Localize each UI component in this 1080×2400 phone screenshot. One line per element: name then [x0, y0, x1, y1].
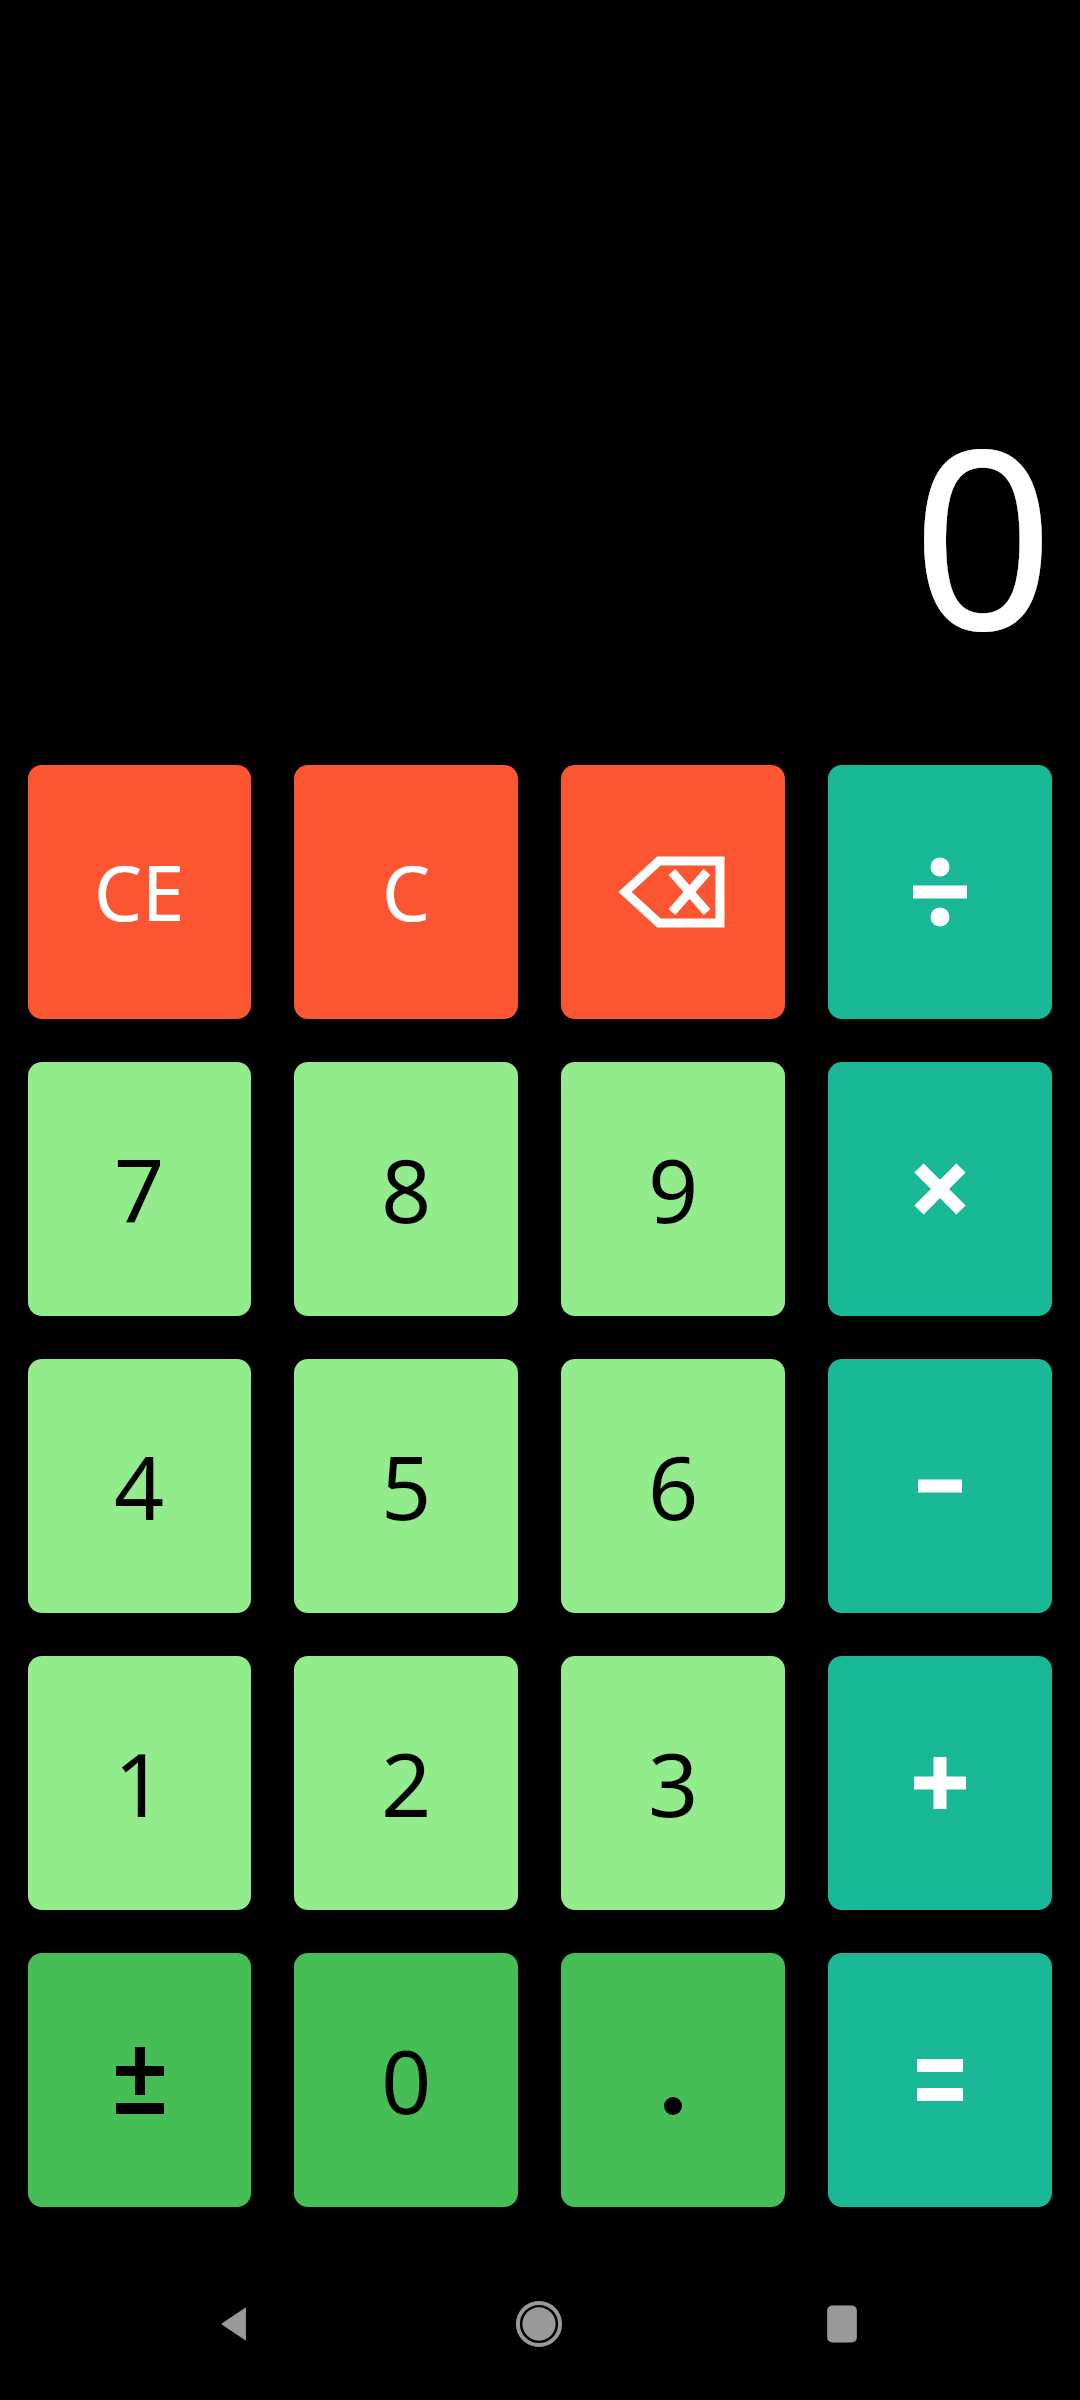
staticText: 2 [381, 1723, 432, 1843]
button[interactable]: 7 [28, 1062, 251, 1316]
staticText: 6 [648, 1426, 699, 1546]
staticText: 9 [648, 1129, 699, 1249]
button[interactable]: Decimal point [561, 1953, 785, 2207]
staticText: 4 [114, 1426, 165, 1546]
button[interactable]: 1 [28, 1656, 251, 1910]
button[interactable]: C [294, 765, 518, 1019]
button[interactable]: Toggle sign [28, 1953, 251, 2207]
staticText: 0 [381, 2020, 432, 2140]
staticText: 0 [912, 365, 1054, 703]
button[interactable]: CE [28, 765, 251, 1019]
button[interactable]: Equals [828, 1953, 1052, 2207]
staticText: 7 [114, 1129, 165, 1249]
button[interactable]: 3 [561, 1656, 785, 1910]
button[interactable]: 2 [294, 1656, 518, 1910]
button[interactable]: Backspace [561, 765, 785, 1019]
staticText: C [382, 840, 431, 944]
button[interactable]: 8 [294, 1062, 518, 1316]
button[interactable]: 9 [561, 1062, 785, 1316]
staticText: 3 [648, 1723, 699, 1843]
staticText: 8 [381, 1129, 432, 1249]
staticText: 1 [114, 1723, 165, 1843]
button[interactable]: Divide [828, 765, 1052, 1019]
button[interactable]: 5 [294, 1359, 518, 1613]
button[interactable]: Home [474, 2249, 604, 2399]
button[interactable]: 6 [561, 1359, 785, 1613]
button[interactable]: Minus [828, 1359, 1052, 1613]
button[interactable]: 0 [294, 1953, 518, 2207]
button[interactable]: Back [172, 2249, 302, 2399]
button[interactable]: 4 [28, 1359, 251, 1613]
button[interactable]: Recent apps [777, 2249, 907, 2399]
button[interactable]: Plus [828, 1656, 1052, 1910]
button[interactable]: Multiply [828, 1062, 1052, 1316]
staticText: CE [94, 840, 185, 944]
staticText: 5 [381, 1426, 432, 1546]
